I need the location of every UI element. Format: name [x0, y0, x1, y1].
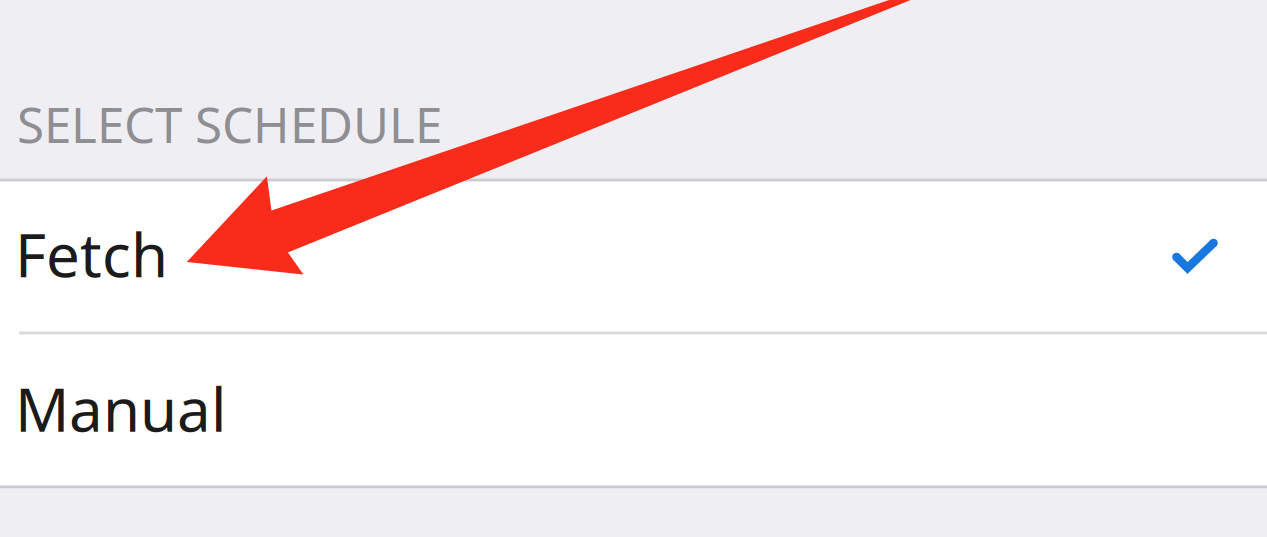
button[interactable]: Fetch — [0, 180, 1267, 332]
staticText: Manual — [15, 369, 226, 448]
button[interactable]: Manual — [0, 332, 1267, 487]
staticText: Fetch — [15, 214, 168, 294]
staticText: SELECT SCHEDULE — [17, 91, 442, 156]
